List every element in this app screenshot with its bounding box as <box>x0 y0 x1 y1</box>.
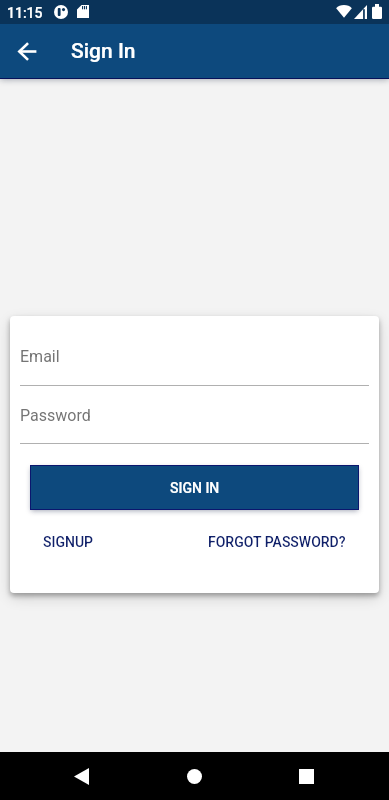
staticText: Sign In <box>71 39 136 64</box>
button[interactable]: Back <box>0 24 54 78</box>
other: Wi-Fi <box>336 4 352 18</box>
other: Storage <box>77 5 89 18</box>
button[interactable]: Recents <box>282 752 330 800</box>
staticText: SIGN IN <box>170 480 220 496</box>
staticText: Password <box>20 406 91 425</box>
button[interactable]: SIGN IN <box>31 466 358 509</box>
other: Notification <box>54 5 68 19</box>
staticText: Email <box>20 347 60 366</box>
button[interactable]: Home <box>170 752 218 800</box>
button[interactable]: Back <box>57 752 105 800</box>
staticText: 11:15 <box>7 5 43 21</box>
staticText: SIGNUP <box>43 534 94 550</box>
other: Battery <box>372 4 382 19</box>
button[interactable]: FORGOT PASSWORD? <box>195 528 359 556</box>
staticText: FORGOT PASSWORD? <box>208 534 346 550</box>
button[interactable]: SIGNUP <box>30 528 107 556</box>
other: Mobile signal <box>354 5 367 19</box>
